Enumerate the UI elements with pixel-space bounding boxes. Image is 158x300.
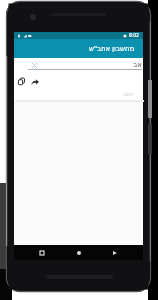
button[interactable]: Clear bbox=[29, 60, 39, 70]
button[interactable]: Back bbox=[34, 245, 50, 260]
staticText: חשב bbox=[14, 91, 133, 97]
button[interactable]: Share bbox=[29, 76, 40, 87]
staticText: מחשבון אתב"ש bbox=[89, 44, 135, 54]
button[interactable]: Home bbox=[71, 245, 87, 260]
staticText: 8:02 bbox=[129, 32, 139, 39]
button[interactable]: מחשבון אתב"ש bbox=[14, 39, 143, 58]
button[interactable]: Copy bbox=[16, 76, 27, 87]
staticText: אב bbox=[14, 61, 142, 69]
button[interactable]: Recents bbox=[107, 245, 123, 260]
